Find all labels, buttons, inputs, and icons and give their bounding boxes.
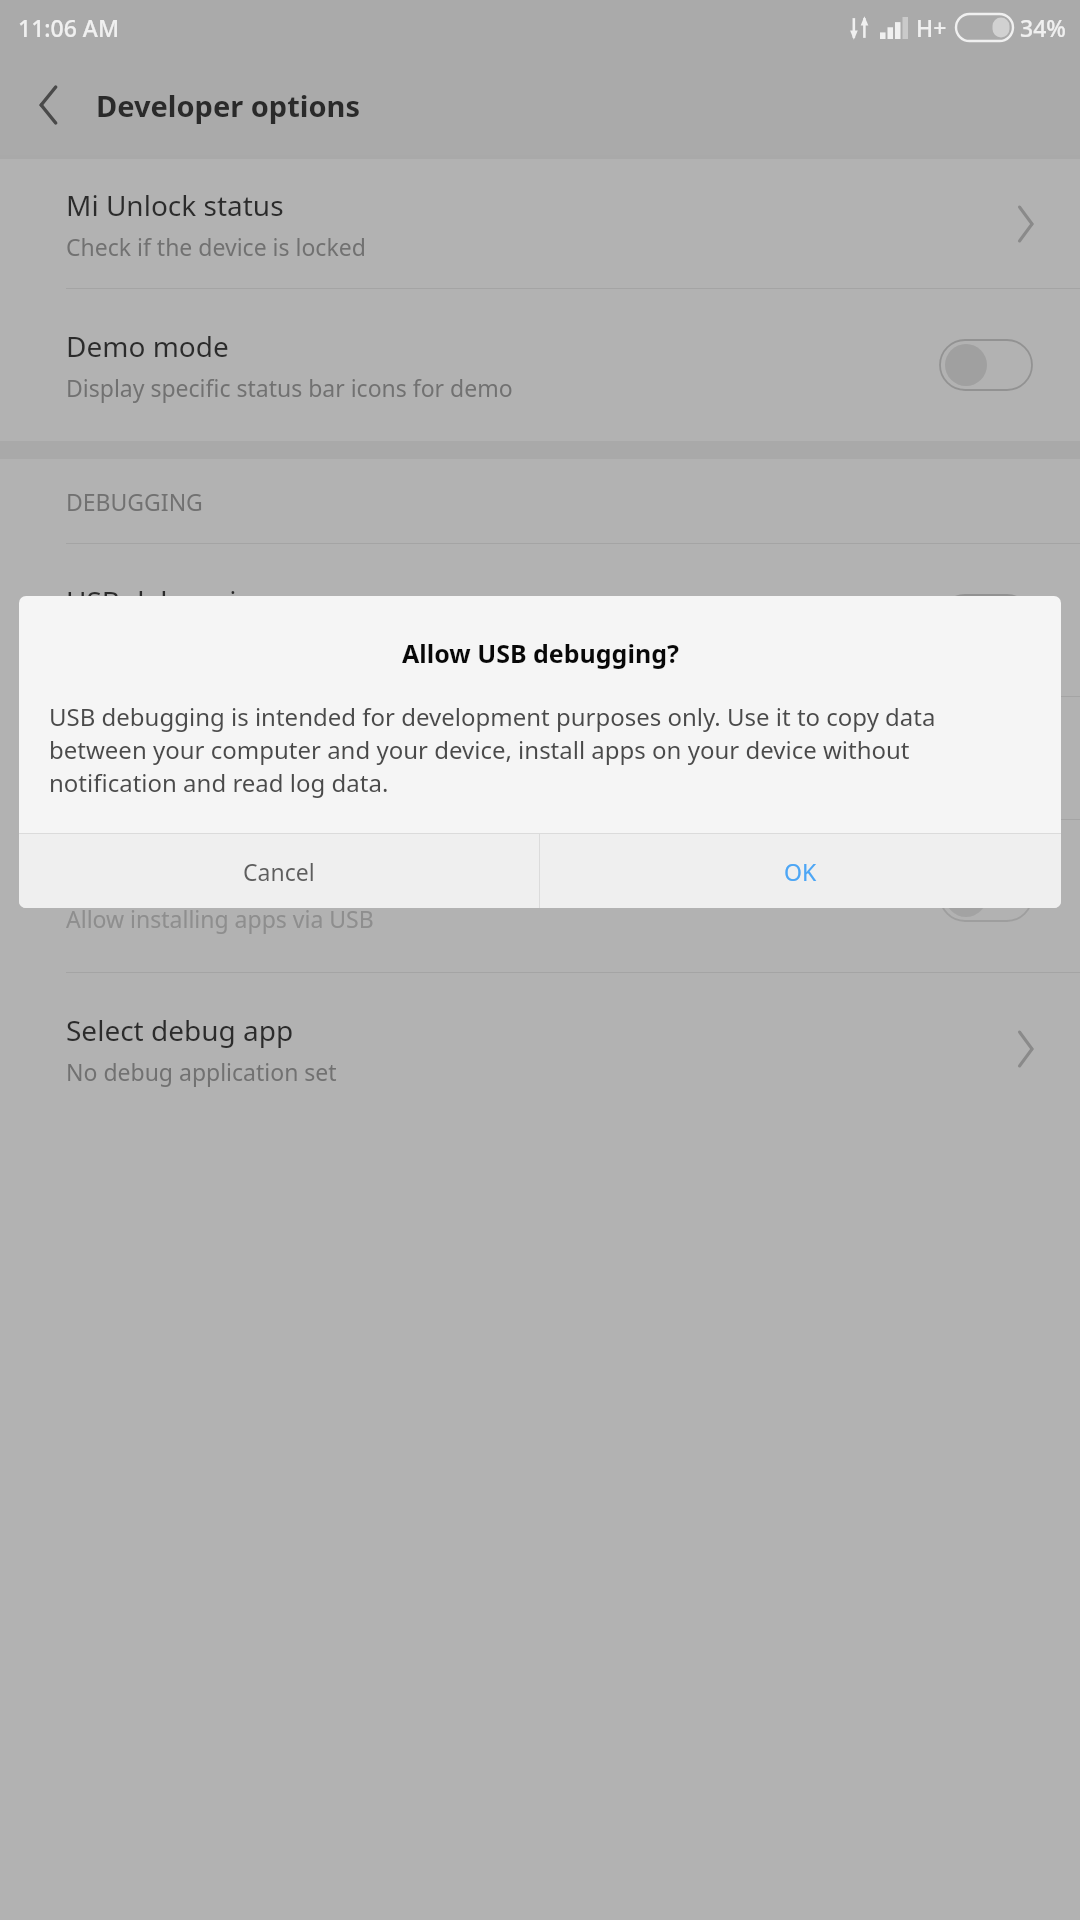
staticText: DEBUGGING	[66, 486, 203, 517]
button[interactable]: Mi Unlock status	[0, 159, 1080, 288]
staticText: Revoke USB debugging authorisations	[66, 739, 571, 777]
other: Open	[1014, 1032, 1036, 1066]
staticText: Debug mode when USB is connected	[66, 627, 465, 658]
button[interactable]: Demo mode	[0, 289, 1080, 441]
staticText: Mi Unlock status	[66, 186, 284, 224]
button[interactable]: OK	[540, 834, 1061, 908]
button[interactable]: Install via USB	[0, 820, 1080, 972]
staticText: Display specific status bar icons for de…	[66, 372, 513, 403]
staticText: Install via USB	[66, 858, 253, 896]
staticText: OK	[784, 856, 817, 887]
button[interactable]: Cancel	[19, 834, 539, 908]
staticText: Developer options	[96, 86, 360, 125]
staticText: 11:06 AM	[18, 12, 120, 43]
staticText: Cancel	[243, 856, 315, 887]
button[interactable]: Select debug app	[0, 973, 1080, 1125]
staticText: Demo mode	[66, 327, 229, 365]
staticText: Allow installing apps via USB	[66, 903, 374, 934]
button[interactable]: USB debugging	[0, 544, 1080, 696]
staticText: No debug application set	[66, 1056, 337, 1087]
staticText: H+	[916, 12, 947, 43]
staticText: 34%	[1020, 12, 1066, 43]
staticText: USB debugging	[66, 582, 272, 620]
staticText: USB debugging is intended for developmen…	[49, 700, 1037, 799]
staticText: Select debug app	[66, 1011, 294, 1049]
staticText: Allow USB debugging?	[402, 636, 679, 670]
staticText: Check if the device is locked	[66, 231, 366, 262]
button[interactable]: Back	[22, 77, 78, 133]
other: Open	[1014, 207, 1036, 241]
button[interactable]: Revoke USB debugging authorisations	[0, 697, 1080, 819]
